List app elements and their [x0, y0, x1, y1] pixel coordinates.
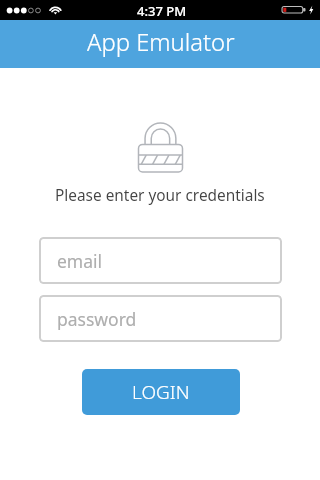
other: Signal strength and Wi-Fi — [0, 0, 66, 20]
button[interactable]: LOGIN — [82, 369, 240, 415]
staticText: 4:37 PM — [137, 2, 187, 20]
staticText: password — [57, 307, 137, 331]
other: Secure login — [137, 121, 186, 175]
other: Battery low, charging — [280, 0, 320, 20]
staticText: Please enter your credentials — [55, 185, 265, 206]
staticText: email — [57, 249, 103, 273]
staticText: LOGIN — [132, 379, 190, 405]
button[interactable]: password — [39, 295, 282, 342]
staticText: App Emulator — [87, 26, 235, 58]
button[interactable]: email — [39, 237, 282, 284]
